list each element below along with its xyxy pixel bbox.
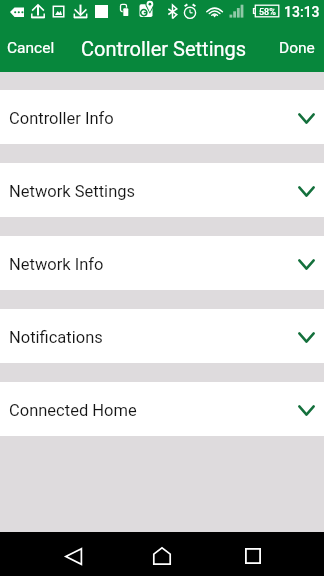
button[interactable]: Connected Home [0,382,324,436]
staticText: Notifications [9,328,103,347]
button[interactable]: Back [49,534,97,576]
button[interactable]: Done [268,24,324,72]
staticText: Connected Home [9,401,137,420]
button[interactable]: Network Info [0,236,324,290]
staticText: Controller Settings [81,37,247,60]
button[interactable]: Network Settings [0,163,324,217]
staticText: 13:13 [284,4,320,20]
staticText: 58% [259,7,276,18]
button[interactable]: Notifications [0,309,324,363]
staticText: Done [279,39,315,57]
staticText: Network Info [9,255,104,274]
button[interactable]: Recents [229,534,277,576]
button[interactable]: Cancel [0,24,64,72]
button[interactable]: Home [138,534,186,576]
staticText: Controller Info [9,109,114,128]
staticText: Network Settings [9,182,136,201]
staticText: Cancel [7,39,55,57]
button[interactable]: Controller Info [0,90,324,144]
